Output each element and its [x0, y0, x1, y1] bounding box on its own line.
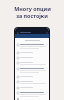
button[interactable]: [17, 51, 47, 55]
button[interactable]: [17, 75, 47, 79]
button[interactable]: [17, 86, 47, 90]
staticText: Многу опции: [14, 5, 51, 12]
button[interactable]: Back: [16, 31, 19, 34]
button[interactable]: [17, 43, 47, 50]
button[interactable]: Search: [45, 31, 48, 34]
button[interactable]: [17, 67, 47, 74]
button[interactable]: [17, 56, 47, 60]
button[interactable]: [17, 61, 47, 66]
button[interactable]: [17, 91, 47, 98]
staticText: за постојки: [16, 12, 48, 19]
button[interactable]: [17, 80, 47, 85]
